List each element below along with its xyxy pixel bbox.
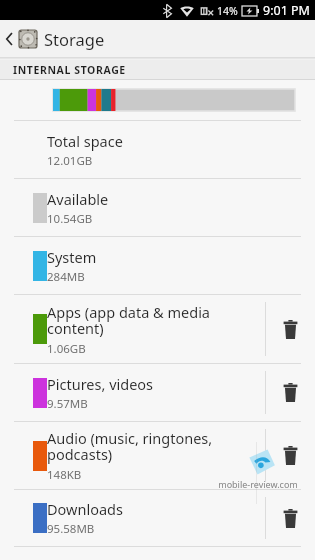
staticText: 1.06GB: [47, 341, 86, 357]
staticText: 9:01 PM: [263, 2, 310, 19]
staticText: Apps (app data & media content): [47, 302, 257, 339]
button[interactable]: Apps (app data & media content): [0, 295, 315, 363]
button[interactable]: Pictures, videos: [0, 364, 315, 421]
staticText: 12.01GB: [47, 153, 93, 169]
staticText: Total space: [47, 131, 123, 151]
button[interactable]: Available: [0, 179, 315, 236]
button[interactable]: Audio (music, ringtones, podcasts): [0, 422, 315, 489]
staticText: mobile-review.com: [218, 478, 298, 490]
staticText: 95.58MB: [47, 521, 95, 537]
staticText: 9.57MB: [47, 396, 88, 412]
staticText: 284MB: [47, 269, 85, 285]
button[interactable]: Downloads: [0, 490, 315, 546]
staticText: Available: [47, 189, 109, 209]
button[interactable]: Navigate up: [0, 20, 46, 57]
button[interactable]: Total space: [0, 121, 315, 178]
button[interactable]: Clear Apps (app data & media content): [266, 295, 315, 363]
button[interactable]: System: [0, 237, 315, 294]
button[interactable]: Clear Audio (music, ringtones, podcasts): [266, 422, 315, 489]
staticText: Pictures, videos: [47, 374, 154, 394]
staticText: Audio (music, ringtones, podcasts): [47, 428, 257, 465]
button[interactable]: Clear Pictures, videos: [266, 364, 315, 421]
staticText: 148KB: [47, 467, 82, 483]
staticText: 14%: [217, 4, 238, 18]
staticText: Storage: [44, 28, 105, 50]
staticText: Downloads: [47, 499, 123, 519]
staticText: 10.54GB: [47, 211, 93, 227]
button[interactable]: Clear Downloads: [266, 490, 315, 546]
staticText: System: [47, 247, 97, 267]
staticText: INTERNAL STORAGE: [13, 63, 126, 77]
